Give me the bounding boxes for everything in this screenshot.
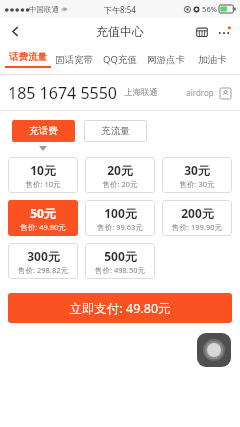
staticText: 20元 xyxy=(107,162,133,178)
button[interactable]: 固话宽带 xyxy=(51,45,97,74)
staticText: 充流量 xyxy=(101,125,130,137)
button[interactable]: 加油卡 xyxy=(189,45,235,74)
button[interactable]: 50元 xyxy=(8,200,78,236)
staticText: 售价: 10元 xyxy=(25,179,61,189)
staticText: 加油卡 xyxy=(198,54,227,66)
staticText: 充值中心 xyxy=(96,24,144,39)
button[interactable]: 100元 xyxy=(85,200,155,236)
staticText: 充话费 xyxy=(29,125,58,137)
button[interactable]: 20元 xyxy=(85,157,155,193)
button[interactable]: More xyxy=(213,21,235,43)
button[interactable]: Store xyxy=(191,21,213,43)
staticText: 10元 xyxy=(30,162,56,178)
staticText: 立即支付: 49.80元 xyxy=(69,300,171,317)
staticText: 售价: 298.82元 xyxy=(18,265,68,275)
staticText: 200元 xyxy=(181,205,214,221)
staticText: QQ充值 xyxy=(103,53,137,66)
button[interactable]: 充话费 xyxy=(12,120,75,142)
button[interactable]: 充流量 xyxy=(84,120,147,142)
button[interactable]: 网游点卡 xyxy=(143,45,189,74)
staticText: 30元 xyxy=(184,162,210,178)
button[interactable]: 300元 xyxy=(8,243,78,279)
button[interactable]: 立即支付: 49.80元 xyxy=(8,293,232,323)
button[interactable]: 200元 xyxy=(162,200,232,236)
button[interactable]: 10元 xyxy=(8,157,78,193)
staticText: 售价: 49.80元 xyxy=(20,222,66,232)
staticText: 网游点卡 xyxy=(147,54,185,66)
staticText: 售价: 498.50元 xyxy=(95,265,145,275)
staticText: 185 1674 5550 xyxy=(8,82,117,104)
button[interactable]: 500元 xyxy=(85,243,155,279)
staticText: 100元 xyxy=(104,205,137,221)
staticText: 中国联通 xyxy=(29,5,59,14)
staticText: 上海联通 xyxy=(124,87,158,98)
staticText: 售价: 20元 xyxy=(102,179,138,189)
button[interactable]: Back xyxy=(0,18,30,45)
staticText: 话费流量 xyxy=(9,51,47,63)
staticText: 售价: 199.90元 xyxy=(172,222,222,232)
button[interactable]: AssistiveTouch xyxy=(197,333,231,367)
staticText: 300元 xyxy=(27,248,60,264)
staticText: 500元 xyxy=(104,248,137,264)
staticText: airdrop xyxy=(186,87,214,98)
button[interactable]: 话费流量 xyxy=(5,45,51,74)
button[interactable]: 30元 xyxy=(162,157,232,193)
staticText: 50元 xyxy=(30,205,56,221)
staticText: 下午8:54 xyxy=(104,4,136,15)
button[interactable]: Contacts xyxy=(218,86,232,100)
button[interactable]: QQ充值 xyxy=(97,45,143,74)
staticText: 售价: 30元 xyxy=(179,179,215,189)
staticText: 售价: 99.63元 xyxy=(97,222,143,232)
staticText: 56% xyxy=(202,4,217,14)
staticText: 固话宽带 xyxy=(55,54,93,66)
